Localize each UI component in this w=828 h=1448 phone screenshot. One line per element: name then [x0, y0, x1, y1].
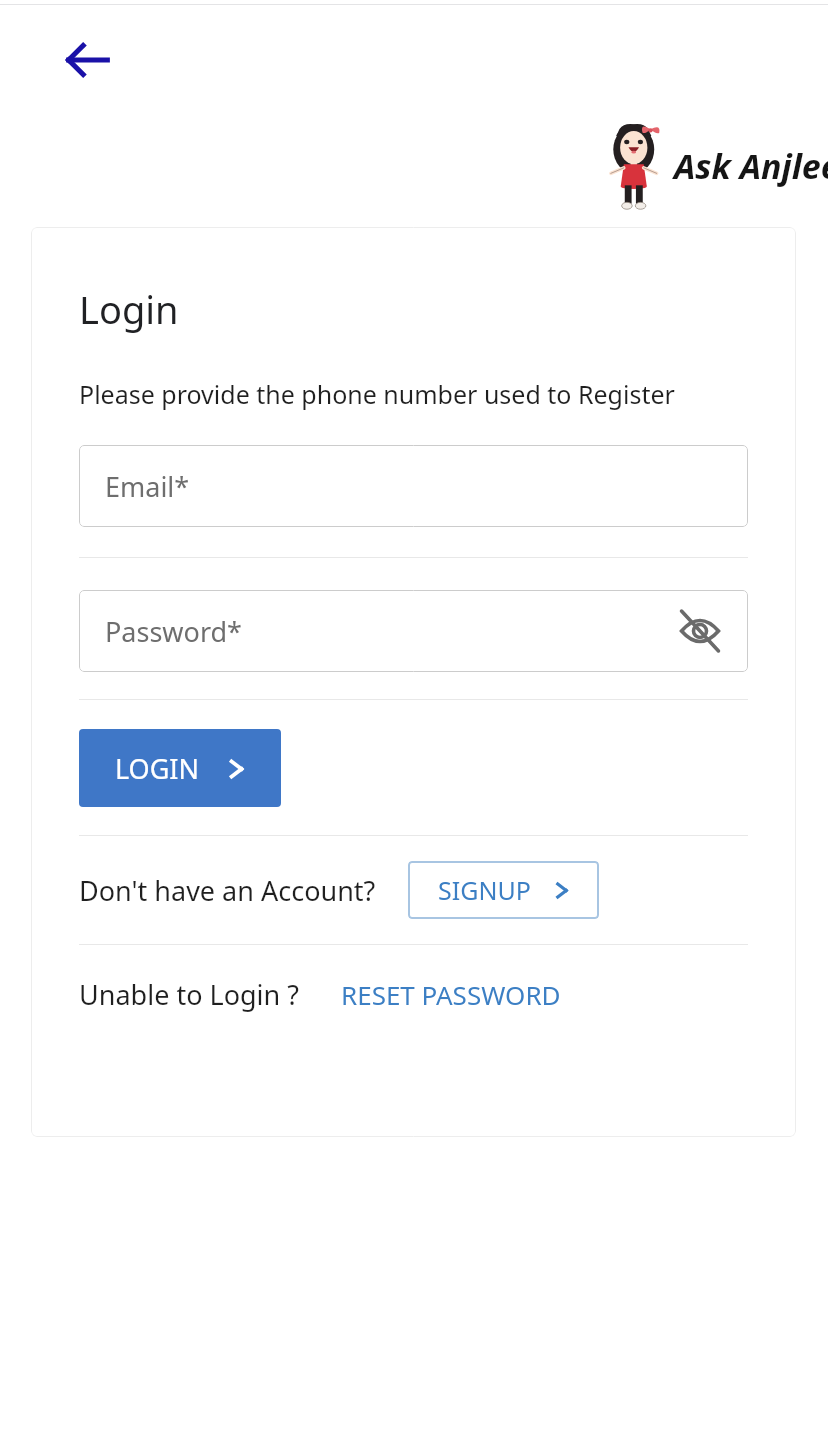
button[interactable]: RESET PASSWORD — [337, 971, 565, 1018]
button[interactable]: SIGNUP — [408, 861, 599, 919]
staticText: Unable to Login ? — [79, 976, 299, 1013]
staticText: Login — [79, 283, 179, 335]
staticText: LOGIN — [115, 750, 200, 787]
staticText: Email* — [105, 468, 190, 505]
staticText: Password* — [105, 613, 242, 650]
button[interactable]: Show password — [672, 603, 728, 659]
staticText: RESET PASSWORD — [341, 977, 561, 1012]
button[interactable]: LOGIN — [79, 729, 281, 807]
staticText: Please provide the phone number used to … — [79, 377, 675, 411]
button[interactable]: Back — [52, 24, 124, 96]
staticText: Ask Anjlee — [674, 143, 828, 189]
staticText: SIGNUP — [438, 873, 531, 907]
staticText: Don't have an Account? — [79, 872, 376, 909]
button[interactable]: Email* — [79, 445, 748, 527]
button[interactable]: Password* — [79, 590, 748, 672]
